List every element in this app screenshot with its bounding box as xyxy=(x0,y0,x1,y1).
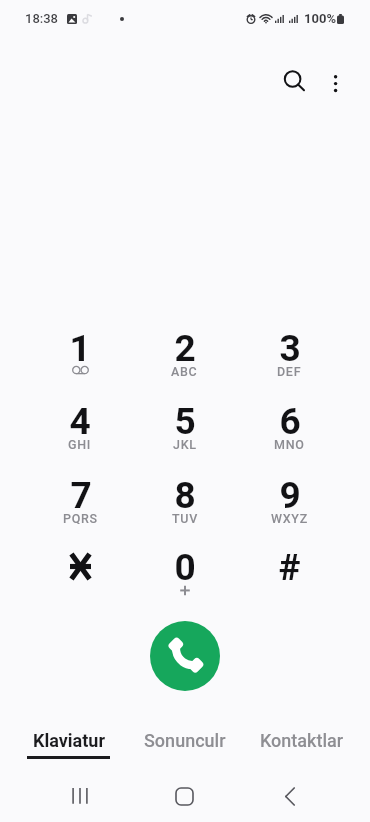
button[interactable]: 5 xyxy=(132,400,237,473)
staticText: 9 xyxy=(279,474,301,514)
button[interactable]: 8 xyxy=(132,474,237,547)
button[interactable]: 1 xyxy=(28,327,132,400)
staticText: 8 xyxy=(174,474,196,514)
button[interactable]: Kontaktlar xyxy=(260,730,344,751)
staticText: PQRS xyxy=(63,511,98,524)
staticText: GHI xyxy=(68,437,92,450)
button[interactable]: 0 xyxy=(132,546,237,606)
staticText: Kontaktlar xyxy=(260,730,344,751)
staticText: 2 xyxy=(174,327,196,367)
staticText: MNO xyxy=(274,437,305,450)
button[interactable]: Back xyxy=(237,774,342,818)
staticText: DEF xyxy=(277,364,302,377)
staticText: 18:38 xyxy=(25,11,59,26)
button[interactable]: Search xyxy=(271,58,317,104)
button[interactable]: Call xyxy=(150,621,220,691)
staticText: Klaviatur xyxy=(33,730,105,751)
staticText: 0 xyxy=(174,546,196,586)
staticText: 6 xyxy=(279,400,301,440)
button[interactable]: Home xyxy=(132,774,237,818)
button[interactable]: # xyxy=(237,546,342,606)
staticText: JKL xyxy=(173,437,197,450)
button[interactable]: 9 xyxy=(237,474,342,547)
staticText: 100% xyxy=(304,11,336,26)
staticText: TUV xyxy=(172,511,198,524)
button[interactable]: More options xyxy=(313,60,357,104)
button[interactable]: 3 xyxy=(237,327,342,400)
button[interactable]: 7 xyxy=(28,474,132,547)
button[interactable]: Klaviatur xyxy=(27,730,110,759)
staticText: # xyxy=(278,546,301,586)
staticText: WXYZ xyxy=(271,511,308,524)
button[interactable]: 4 xyxy=(28,400,132,473)
button[interactable] xyxy=(28,546,132,606)
staticText: 4 xyxy=(69,400,91,440)
button[interactable]: Sonunculr xyxy=(144,730,226,751)
staticText: ABC xyxy=(171,364,198,377)
staticText: 1 xyxy=(69,327,91,367)
staticText: 3 xyxy=(279,327,301,367)
staticText: 7 xyxy=(70,474,92,514)
button[interactable]: 6 xyxy=(237,400,342,473)
staticText: Sonunculr xyxy=(144,730,226,751)
staticText: 5 xyxy=(174,400,196,440)
button[interactable]: Recents xyxy=(28,774,132,818)
button[interactable]: 2 xyxy=(132,327,237,400)
